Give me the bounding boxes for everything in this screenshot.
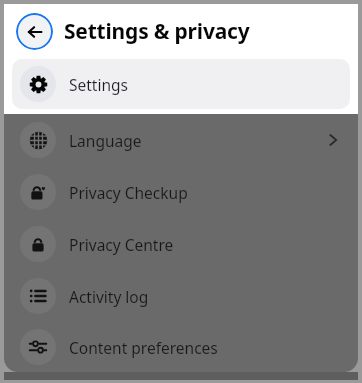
button[interactable]: Back bbox=[16, 13, 53, 50]
button[interactable]: Settings bbox=[12, 59, 350, 109]
button[interactable]: Language bbox=[4, 114, 358, 166]
staticText: Settings & privacy bbox=[64, 17, 250, 46]
staticText: Privacy Centre bbox=[69, 234, 174, 255]
button[interactable]: Content preferences bbox=[4, 322, 358, 372]
button[interactable]: Privacy Checkup bbox=[4, 166, 358, 218]
staticText: Privacy Checkup bbox=[69, 182, 188, 203]
button[interactable]: Activity log bbox=[4, 270, 358, 322]
button[interactable]: Privacy Centre bbox=[4, 218, 358, 270]
staticText: Settings bbox=[69, 74, 128, 95]
staticText: Content preferences bbox=[69, 337, 218, 358]
staticText: Activity log bbox=[69, 286, 149, 307]
staticText: Language bbox=[69, 130, 142, 151]
